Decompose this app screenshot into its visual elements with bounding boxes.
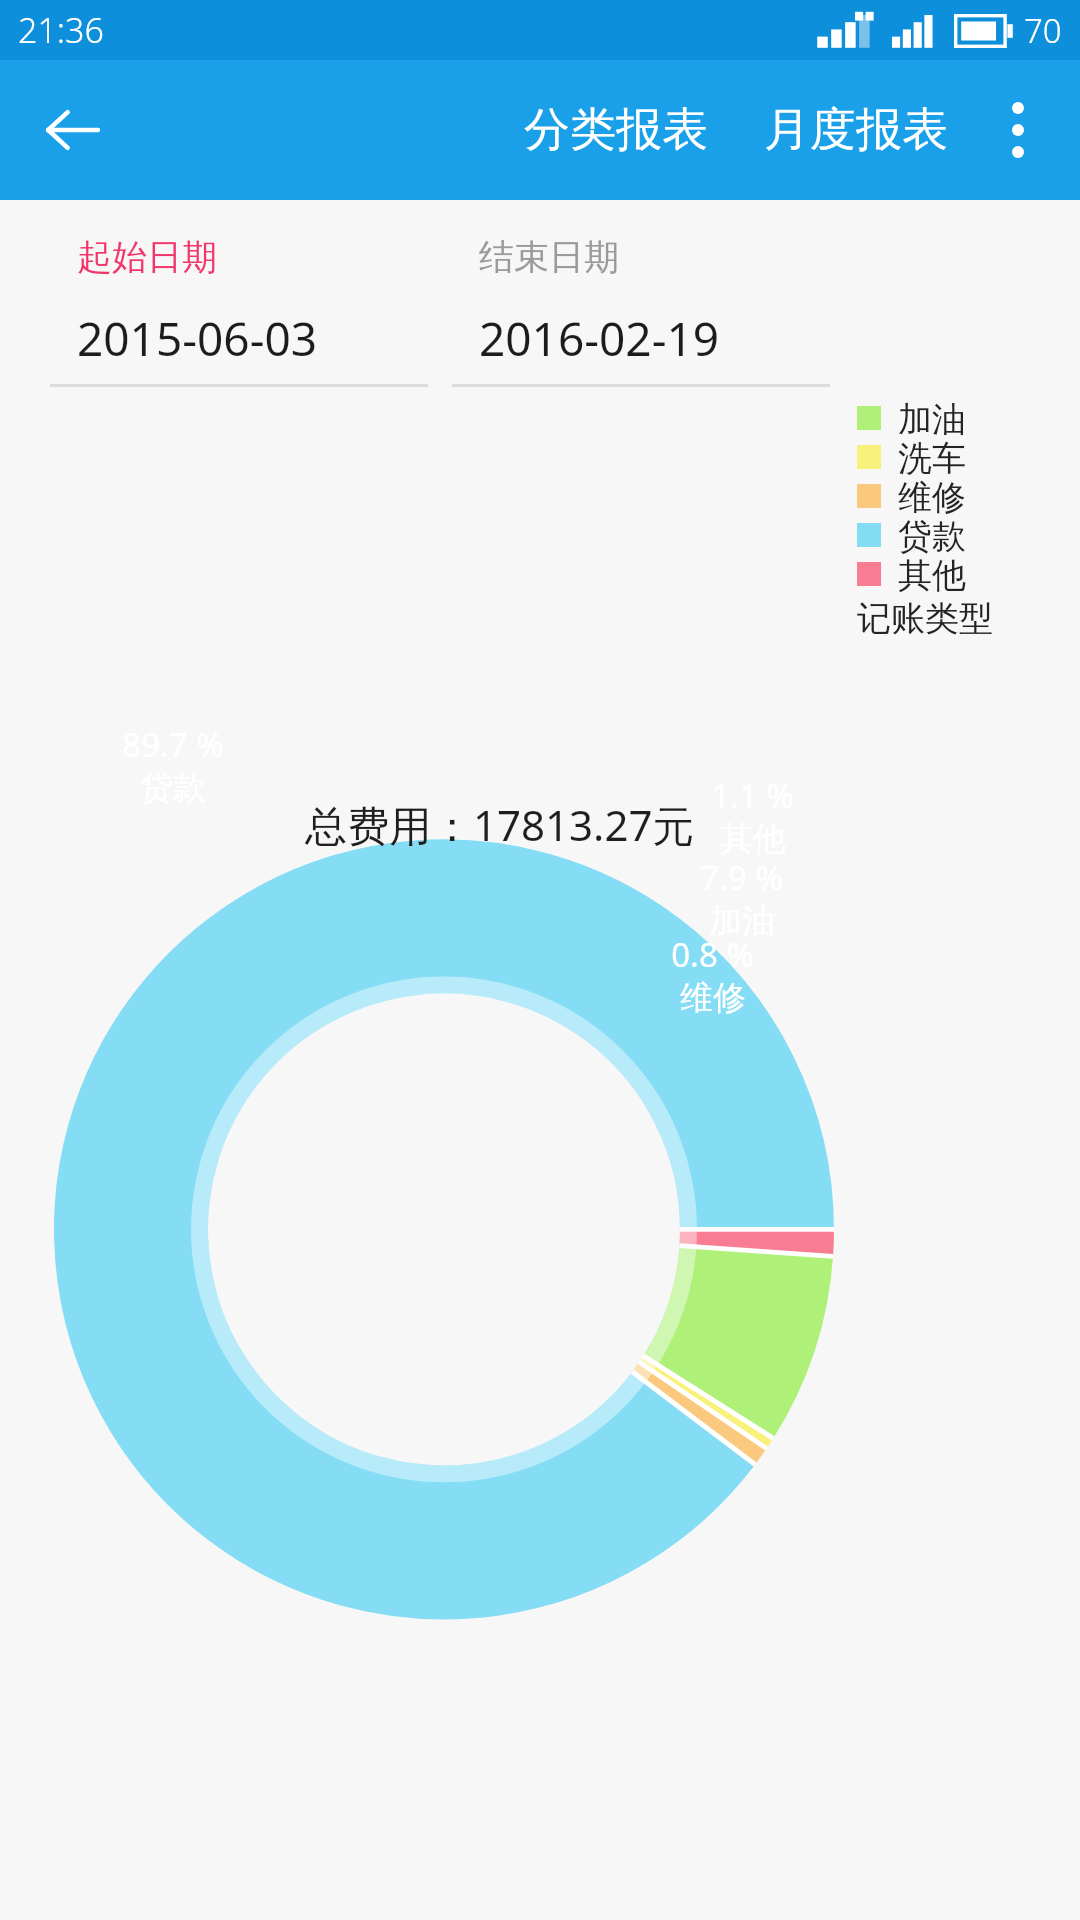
staticText: 其他: [898, 554, 966, 593]
button[interactable]: 起始日期: [50, 235, 428, 387]
button[interactable]: More options: [978, 90, 1058, 170]
button[interactable]: 分类报表: [514, 89, 718, 171]
staticText: 2016-02-19: [479, 307, 720, 370]
staticText: 起始日期: [77, 235, 217, 279]
staticText: 其他: [720, 818, 786, 860]
staticText: 贷款: [140, 767, 206, 809]
staticText: 2015-06-03: [77, 307, 318, 370]
staticText: 加油: [898, 398, 966, 437]
staticText: 总费用：17813.27元: [305, 796, 695, 853]
staticText: 维修: [898, 476, 966, 515]
staticText: 分类报表: [524, 101, 708, 159]
staticText: 洗车: [898, 437, 966, 476]
button[interactable]: 月度报表: [754, 89, 958, 171]
staticText: 70: [1024, 8, 1062, 53]
staticText: 加油: [709, 900, 775, 942]
staticText: 维修: [680, 977, 746, 1019]
staticText: 21:36: [18, 7, 104, 53]
staticText: 月度报表: [764, 101, 948, 159]
staticText: 0.8 %: [671, 932, 754, 977]
button[interactable]: 结束日期: [452, 235, 830, 387]
staticText: 结束日期: [479, 235, 619, 279]
staticText: 记账类型: [857, 597, 993, 640]
staticText: 贷款: [898, 515, 966, 554]
button[interactable]: Back: [24, 82, 120, 178]
